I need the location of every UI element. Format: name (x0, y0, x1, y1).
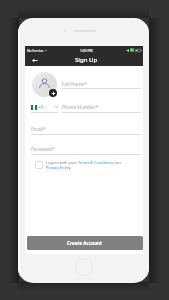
staticText: 1:05 PM (80, 48, 93, 52)
button[interactable]: I agree with your Terms & Conditions and (35, 160, 121, 170)
button[interactable]: Create Account (27, 236, 143, 250)
staticText: Phone Number* (62, 104, 99, 110)
staticText: +2... (38, 104, 47, 110)
staticText: Sign Up (75, 56, 98, 64)
staticText: Privacy Policy. (46, 165, 72, 170)
button[interactable]: Select country code (31, 104, 58, 110)
button[interactable]: Add profile photo (32, 72, 57, 97)
staticText: Email* (31, 126, 46, 132)
button[interactable]: Back (29, 55, 40, 66)
staticText: No Service (27, 48, 44, 52)
staticText: I agree with your Terms & Conditions and (46, 160, 121, 165)
staticText: Create Account (67, 240, 103, 246)
staticText: Full Name* (62, 81, 87, 87)
staticText: Password* (31, 146, 55, 152)
